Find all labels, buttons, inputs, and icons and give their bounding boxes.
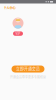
staticText: 立即开通会员 <box>16 66 40 72</box>
staticText: 个人中心 <box>4 6 16 10</box>
button[interactable]: 立即开通会员 <box>11 65 44 72</box>
staticText: VIP <box>15 32 20 36</box>
staticText: 开通会员尊享更多专属权益 <box>10 75 46 79</box>
